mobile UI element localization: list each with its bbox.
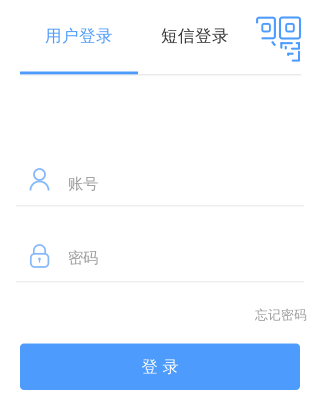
button[interactable]: 短信登录	[136, 8, 254, 64]
button[interactable]: 扫码登录	[250, 11, 306, 67]
button[interactable]: 登 录	[20, 343, 300, 390]
staticText: 登 录	[141, 356, 178, 377]
button[interactable]: 用户登录	[20, 8, 138, 64]
button[interactable]: 忘记密码	[249, 302, 313, 328]
staticText: 密码	[68, 248, 98, 268]
staticText: 账号	[68, 174, 98, 194]
button[interactable]: 密码	[16, 238, 303, 282]
staticText: 用户登录	[45, 26, 113, 46]
staticText: 短信登录	[161, 26, 229, 46]
staticText: 忘记密码	[255, 307, 307, 323]
button[interactable]: 账号	[16, 162, 303, 206]
